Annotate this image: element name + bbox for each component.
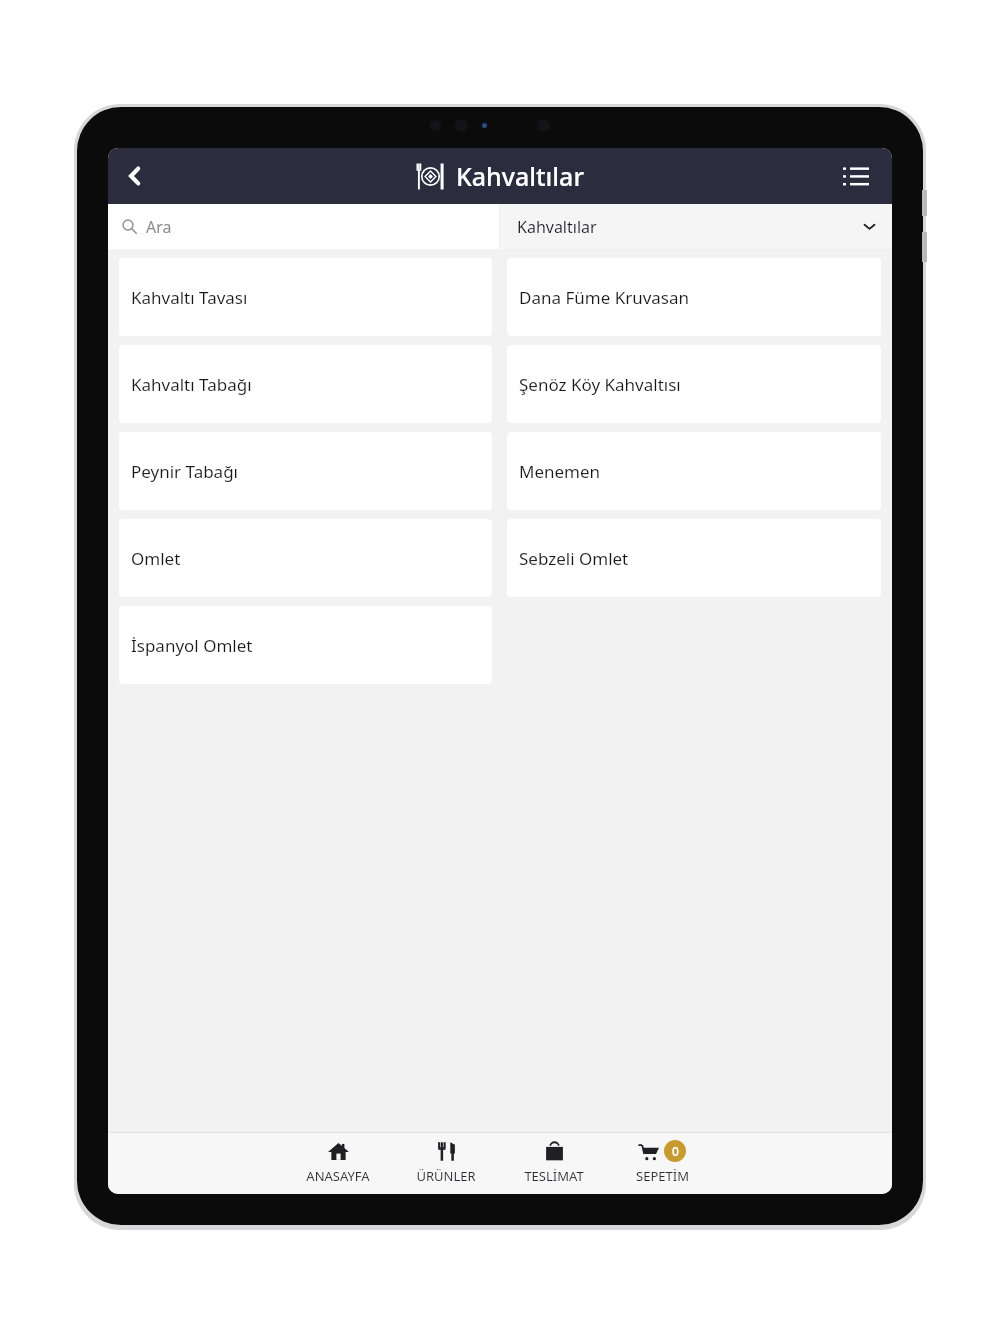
- button[interactable]: Menu: [834, 154, 878, 198]
- staticText: Kahvaltılar: [456, 159, 584, 193]
- button[interactable]: Peynir Tabağı: [119, 432, 492, 510]
- button[interactable]: Kahvaltılar: [501, 204, 892, 249]
- staticText: Peynir Tabağı: [131, 460, 238, 483]
- button[interactable]: Kahvaltı Tavası: [119, 258, 492, 336]
- staticText: ÜRÜNLER: [416, 1167, 476, 1185]
- staticText: Menemen: [519, 460, 601, 483]
- button[interactable]: TESLİMAT: [500, 1133, 608, 1194]
- staticText: Kahvaltı Tavası: [131, 286, 248, 309]
- staticText: Sebzeli Omlet: [519, 547, 629, 570]
- staticText: Dana Füme Kruvasan: [519, 286, 690, 309]
- staticText: Şenöz Köy Kahvaltısı: [519, 373, 681, 396]
- button[interactable]: Kahvaltı Tabağı: [119, 345, 492, 423]
- button[interactable]: 0: [608, 1133, 716, 1194]
- button[interactable]: Menemen: [507, 432, 881, 510]
- staticText: TESLİMAT: [524, 1167, 584, 1185]
- staticText: Kahvaltılar: [517, 216, 597, 238]
- staticText: SEPETİM: [636, 1167, 689, 1185]
- staticText: Kahvaltı Tabağı: [131, 373, 252, 396]
- button[interactable]: Omlet: [119, 519, 492, 597]
- button[interactable]: Şenöz Köy Kahvaltısı: [507, 345, 881, 423]
- button[interactable]: ÜRÜNLER: [392, 1133, 500, 1194]
- staticText: Ara: [146, 216, 172, 238]
- button[interactable]: Dana Füme Kruvasan: [507, 258, 881, 336]
- button[interactable]: ANASAYFA: [284, 1133, 392, 1194]
- button[interactable]: Sebzeli Omlet: [507, 519, 881, 597]
- staticText: ANASAYFA: [306, 1167, 370, 1185]
- staticText: 0: [672, 1143, 679, 1159]
- button[interactable]: Back: [112, 153, 158, 199]
- button[interactable]: İspanyol Omlet: [119, 606, 492, 684]
- staticText: İspanyol Omlet: [131, 634, 253, 657]
- button[interactable]: Ara: [108, 204, 499, 249]
- staticText: Omlet: [131, 547, 181, 570]
